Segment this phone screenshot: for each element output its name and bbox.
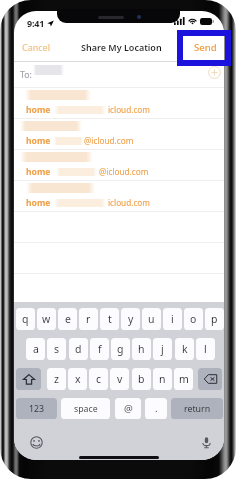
staticText: Cancel <box>22 41 51 53</box>
button[interactable]: Share My Location <box>77 38 166 56</box>
staticText: home <box>26 197 51 209</box>
button[interactable]: h <box>132 338 151 360</box>
button[interactable]: o <box>184 308 203 330</box>
button[interactable]: Cancel <box>17 38 56 56</box>
button[interactable]: return <box>171 398 223 419</box>
button[interactable]: space <box>61 398 110 419</box>
button[interactable]: i <box>163 308 182 330</box>
staticText: To: <box>20 69 32 81</box>
button[interactable]: b <box>132 368 151 390</box>
staticText: return <box>184 403 211 415</box>
staticText: Share My Location <box>81 41 162 53</box>
button[interactable]: . <box>145 398 167 419</box>
button[interactable]: n <box>153 368 172 390</box>
staticText: Send <box>194 41 217 54</box>
staticText: icloud.com <box>108 104 150 115</box>
button[interactable]: u <box>142 308 161 330</box>
staticText: p <box>211 312 218 326</box>
staticText: c <box>96 372 102 386</box>
staticText: v <box>117 372 123 386</box>
button[interactable]: p <box>205 308 224 330</box>
staticText: a <box>33 342 39 356</box>
button[interactable]: s <box>47 338 66 360</box>
button[interactable] <box>14 180 224 211</box>
button[interactable] <box>14 87 224 118</box>
button[interactable]: e <box>58 308 77 330</box>
button[interactable]: z <box>47 368 66 390</box>
staticText: o <box>190 312 197 326</box>
button[interactable]: Shift <box>16 368 41 390</box>
staticText: h <box>138 342 145 356</box>
button[interactable]: Dictation <box>200 436 213 449</box>
staticText: x <box>75 372 81 386</box>
staticText: b <box>138 372 145 386</box>
button[interactable]: a <box>26 338 45 360</box>
staticText: e <box>65 312 71 326</box>
staticText: w <box>42 312 51 326</box>
staticText: u <box>148 312 155 326</box>
button[interactable]: x <box>68 368 87 390</box>
staticText: space <box>74 403 98 415</box>
staticText: k <box>182 342 188 356</box>
button[interactable]: @ <box>115 398 141 419</box>
staticText: j <box>161 342 164 356</box>
staticText: . <box>155 402 158 415</box>
staticText: s <box>54 342 60 356</box>
button[interactable]: Emoji keyboard <box>30 436 43 449</box>
button[interactable]: d <box>69 338 88 360</box>
staticText: g <box>117 342 124 356</box>
button[interactable]: Backspace <box>198 368 222 390</box>
staticText: n <box>159 372 166 386</box>
button[interactable] <box>14 118 224 149</box>
button[interactable]: v <box>110 368 129 390</box>
button[interactable]: f <box>90 338 109 360</box>
button[interactable]: k <box>175 338 194 360</box>
button[interactable]: c <box>89 368 108 390</box>
staticText: home <box>26 166 51 178</box>
staticText: i <box>171 312 174 326</box>
staticText: icloud.com <box>108 197 150 208</box>
staticText: z <box>54 372 59 386</box>
staticText: @ <box>124 402 133 415</box>
staticText: @icloud.com <box>84 135 134 146</box>
button[interactable] <box>14 61 224 86</box>
staticText: q <box>22 312 29 326</box>
staticText: y <box>128 312 134 326</box>
staticText: 9:41 <box>27 17 45 29</box>
staticText: r <box>86 312 91 326</box>
button[interactable]: r <box>79 308 98 330</box>
button[interactable]: Send <box>189 38 222 57</box>
staticText: home <box>26 135 51 147</box>
staticText: f <box>98 342 102 356</box>
button[interactable]: 123 <box>16 398 57 419</box>
staticText: t <box>108 312 112 326</box>
staticText: l <box>204 342 207 356</box>
staticText: @icloud.com <box>99 166 149 177</box>
button[interactable]: q <box>16 308 35 330</box>
button[interactable] <box>14 149 224 180</box>
staticText: d <box>75 342 82 356</box>
button[interactable]: t <box>100 308 119 330</box>
button[interactable]: j <box>153 338 172 360</box>
staticText: home <box>26 104 51 116</box>
button[interactable]: w <box>37 308 56 330</box>
button[interactable]: l <box>196 338 215 360</box>
button[interactable]: m <box>174 368 193 390</box>
staticText: m <box>179 372 189 386</box>
button[interactable]: g <box>111 338 130 360</box>
button[interactable]: Add contact <box>208 66 221 79</box>
staticText: 123 <box>29 403 45 415</box>
button[interactable]: y <box>121 308 140 330</box>
